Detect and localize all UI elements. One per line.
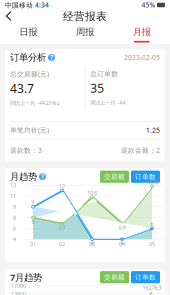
staticText: ? [50, 53, 53, 62]
staticText: 退款金额：2 [121, 146, 160, 155]
staticText: 1.25 [146, 126, 160, 135]
staticText: 交易额 [104, 173, 125, 181]
button[interactable]: 交易额 [100, 271, 129, 283]
staticText: 11 [10, 192, 16, 200]
staticText: 01 [30, 241, 36, 248]
staticText: 9 [31, 199, 34, 206]
staticText: 17000 [11, 282, 26, 289]
staticText: 月报 [133, 26, 151, 38]
button[interactable]: 日报 [0, 23, 57, 44]
staticText: 4 [13, 236, 16, 243]
staticText: 04 [119, 241, 125, 248]
button[interactable]: 月报 [113, 23, 170, 44]
staticText: 周报 [76, 26, 94, 38]
staticText: 13 [10, 182, 16, 189]
staticText: 订单数 [135, 173, 156, 181]
staticText: 2023-02-05 [124, 53, 160, 62]
staticText: 6 [150, 220, 153, 227]
staticText: 6.9 [118, 224, 125, 231]
staticText: 中国移动 4:34 [5, 1, 49, 9]
staticText: 35 [90, 80, 104, 96]
staticText: 经营报表 [63, 10, 107, 23]
staticText: 总交易额(元) [10, 70, 49, 78]
staticText: 6 [13, 225, 16, 232]
staticText: 日报 [19, 26, 37, 38]
staticText: 43.7 [10, 80, 34, 96]
button[interactable]: 交易额 [100, 171, 129, 183]
staticText: 月趋势 [10, 171, 37, 182]
staticText: 10.8 [87, 189, 97, 196]
staticText: 总订单数 [90, 70, 118, 78]
staticText: 单笔均价(元) [10, 126, 49, 135]
staticText: 16278.3 [142, 284, 161, 291]
staticText: 02 [59, 241, 65, 248]
button[interactable]: 订单数 [131, 171, 160, 183]
staticText: 05 [149, 241, 155, 248]
staticText: 同比上一月 -44 [90, 99, 125, 106]
staticText: 交易额 [104, 273, 125, 281]
staticText: 6.9 [58, 224, 65, 231]
staticText: 45% [141, 1, 155, 9]
staticText: 12.80 [145, 178, 158, 185]
staticText: 订单分析 [10, 52, 46, 63]
button[interactable]: 订单数 [131, 271, 160, 283]
staticText: 7月趋势 [10, 271, 42, 283]
button[interactable]: 周报 [57, 23, 113, 44]
staticText: 4 [120, 240, 123, 247]
button[interactable]: Back [0, 10, 18, 23]
staticText: 同比上一月 -44.21%↓ [10, 99, 60, 106]
staticText: 12 [59, 183, 65, 190]
staticText: 退款数：3 [10, 146, 42, 155]
staticText: 订单数 [135, 273, 156, 281]
staticText: 8 [31, 218, 34, 225]
staticText: ? [41, 172, 44, 181]
staticText: 9 [13, 203, 16, 210]
staticText: 03 [89, 241, 95, 248]
staticText: 13600 [11, 290, 26, 295]
staticText: 4 [90, 240, 93, 247]
staticText: 8 [13, 214, 16, 221]
